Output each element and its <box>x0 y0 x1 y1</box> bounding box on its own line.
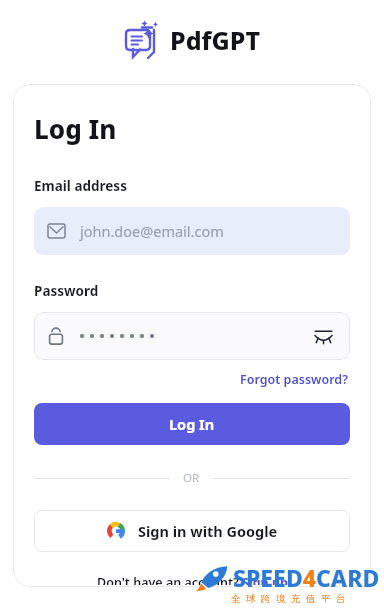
button[interactable]: Sign in with Google <box>34 510 350 552</box>
staticText: Sign in with Google <box>138 521 278 541</box>
staticText: Don't have an account? Sign up <box>97 574 288 585</box>
button[interactable]: john.doe@email.com <box>34 207 350 255</box>
staticText: 值 <box>306 593 316 605</box>
staticText: 平 <box>321 593 331 605</box>
button[interactable]: Don't have an account? Sign up <box>95 572 290 587</box>
button[interactable]: Show password <box>310 323 336 349</box>
staticText: PdfGPT <box>170 23 261 57</box>
staticText: 球 <box>246 593 256 605</box>
staticText: 跨 <box>261 593 271 605</box>
staticText: OR <box>183 470 200 486</box>
staticText: 充 <box>291 593 301 605</box>
button[interactable]: Show password <box>34 312 350 360</box>
staticText: 台 <box>336 593 346 605</box>
staticText: Password <box>34 282 99 300</box>
staticText: Log In <box>34 111 117 146</box>
button[interactable]: Log In <box>34 403 350 445</box>
staticText: Forgot password? <box>240 371 348 388</box>
staticText: john.doe@email.com <box>80 221 224 241</box>
staticText: 境 <box>276 593 286 605</box>
staticText: Email address <box>34 177 127 195</box>
staticText: Log In <box>169 414 215 434</box>
button[interactable]: Forgot password? <box>238 369 350 390</box>
staticText: SPEED4CARD <box>233 562 380 593</box>
staticText: 全 <box>231 593 241 605</box>
